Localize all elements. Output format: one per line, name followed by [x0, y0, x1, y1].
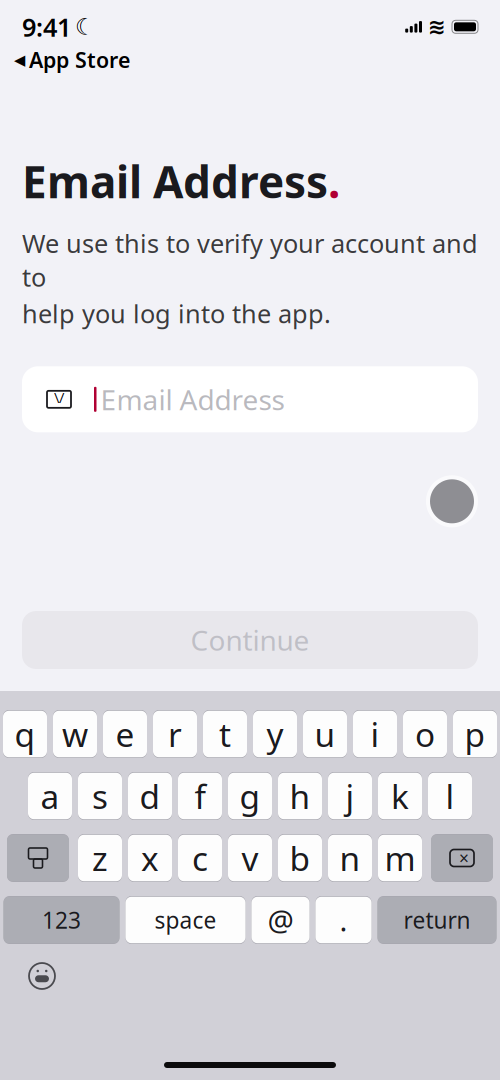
button[interactable]: k — [378, 772, 422, 820]
staticText: 123 — [42, 905, 81, 935]
staticText: x — [141, 836, 159, 880]
button[interactable]: x — [128, 834, 172, 882]
staticText: 123 — [42, 905, 81, 935]
button[interactable]: Shift — [7, 834, 69, 882]
button[interactable]: a — [28, 772, 72, 820]
staticText: m — [384, 836, 415, 880]
button[interactable]: . — [315, 896, 371, 944]
button[interactable]: h — [278, 772, 322, 820]
staticText: i — [370, 712, 379, 756]
staticText: return — [403, 905, 470, 935]
staticText: v — [241, 836, 258, 880]
button[interactable]: t — [203, 710, 247, 758]
staticText: space — [154, 905, 216, 935]
staticText: 9:41 — [22, 10, 71, 44]
staticText: a — [40, 774, 59, 818]
staticText: l — [445, 774, 454, 818]
staticText: q — [14, 712, 35, 756]
staticText: ◀ — [14, 51, 25, 68]
button[interactable]: w — [53, 710, 97, 758]
staticText: b — [289, 836, 310, 880]
staticText: f — [194, 774, 205, 818]
button[interactable]: b — [278, 834, 322, 882]
staticText: We use this to verify your account and t… — [22, 226, 478, 294]
staticText: n — [339, 836, 360, 880]
button[interactable]: c — [178, 834, 222, 882]
staticText: m — [384, 836, 415, 880]
staticText: space — [154, 905, 216, 935]
button[interactable]: u — [303, 710, 347, 758]
staticText: e — [115, 712, 134, 756]
staticText: b — [289, 836, 310, 880]
button[interactable]: z — [78, 834, 122, 882]
staticText: help you log into the app. — [22, 297, 331, 330]
button[interactable]: q — [3, 710, 47, 758]
button[interactable]: o — [403, 710, 447, 758]
staticText: v — [241, 836, 258, 880]
button[interactable]: p — [453, 710, 497, 758]
staticText: c — [192, 836, 208, 880]
button[interactable]: g — [228, 772, 272, 820]
staticText: u — [314, 712, 335, 756]
staticText: y — [266, 712, 283, 756]
button[interactable]: v — [228, 834, 272, 882]
button[interactable]: space — [125, 896, 245, 944]
staticText: u — [314, 712, 335, 756]
staticText: p — [464, 712, 485, 756]
button[interactable]: s — [78, 772, 122, 820]
button[interactable]: ◀ — [0, 44, 144, 74]
staticText: k — [391, 774, 409, 818]
staticText: e — [115, 712, 134, 756]
staticText: j — [345, 774, 354, 818]
button[interactable]: 123 — [3, 896, 119, 944]
button[interactable]: y — [253, 710, 297, 758]
button[interactable]: @ — [251, 896, 309, 944]
button[interactable]: l — [428, 772, 472, 820]
staticText: o — [415, 712, 435, 756]
staticText: d — [139, 774, 160, 818]
staticText: App Store — [29, 46, 130, 74]
button[interactable]: Emoji — [0, 956, 56, 996]
staticText: i — [370, 712, 379, 756]
button[interactable]: Delete — [431, 834, 493, 882]
staticText: a — [40, 774, 59, 818]
staticText: . — [339, 900, 347, 939]
button[interactable]: j — [328, 772, 372, 820]
button[interactable]: d — [128, 772, 172, 820]
staticText: r — [168, 712, 182, 756]
staticText: ≋ — [428, 15, 446, 39]
button[interactable]: r — [153, 710, 197, 758]
staticText: q — [14, 712, 35, 756]
button[interactable]: f — [178, 772, 222, 820]
button[interactable]: Continue — [22, 611, 478, 669]
button[interactable]: \/ — [22, 366, 478, 432]
staticText: ☾ — [75, 14, 95, 40]
button[interactable]: n — [328, 834, 372, 882]
staticText: @ — [267, 900, 293, 939]
staticText: . — [328, 152, 340, 210]
staticText: return — [403, 905, 470, 935]
staticText: k — [391, 774, 409, 818]
staticText: w — [62, 712, 88, 756]
staticText: s — [92, 774, 108, 818]
staticText: n — [339, 836, 360, 880]
staticText: h — [289, 774, 310, 818]
staticText: × — [459, 846, 469, 869]
button[interactable]: i — [353, 710, 397, 758]
staticText: c — [192, 836, 208, 880]
staticText: . — [339, 900, 347, 939]
staticText: Email Address — [100, 381, 284, 418]
staticText: f — [194, 774, 205, 818]
button[interactable]: e — [103, 710, 147, 758]
staticText: w — [62, 712, 88, 756]
staticText: \/ — [54, 388, 64, 407]
staticText: t — [219, 712, 231, 756]
staticText: o — [415, 712, 435, 756]
button[interactable]: m — [378, 834, 422, 882]
staticText: Continue — [190, 621, 309, 659]
staticText: Email Address — [22, 152, 328, 210]
staticText: p — [464, 712, 485, 756]
staticText: g — [239, 774, 260, 818]
button[interactable]: Profile — [426, 475, 478, 527]
button[interactable]: return — [377, 896, 496, 944]
